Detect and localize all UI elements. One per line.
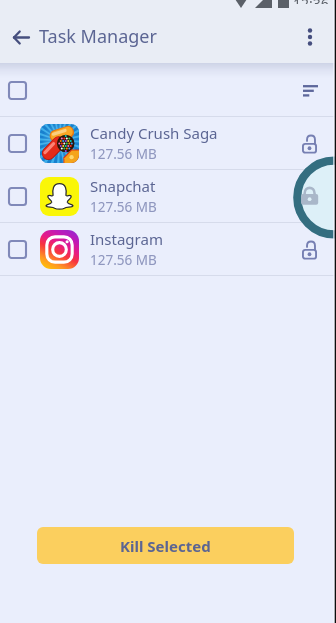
staticText: Kill Selected [120, 536, 211, 556]
staticText: Candy Crush Saga [90, 123, 218, 143]
staticText: 127.56 MB [90, 145, 157, 163]
staticText: 12:36 [293, 0, 329, 4]
button[interactable]: More options [292, 13, 328, 61]
button[interactable]: Lock app [291, 121, 327, 165]
button[interactable]: Kill Selected [37, 527, 294, 564]
staticText: 127.56 MB [90, 251, 157, 269]
button[interactable]: Back [0, 13, 39, 61]
staticText: Snapchat [90, 176, 156, 196]
button[interactable]: Instagram [0, 223, 336, 275]
staticText: Instagram [90, 229, 163, 249]
staticText: 127.56 MB [90, 198, 157, 216]
button[interactable]: Sort [293, 68, 327, 112]
staticText: Task Manager [39, 24, 157, 49]
button[interactable]: Candy Crush Saga [0, 117, 336, 169]
button[interactable]: Lock app [291, 174, 327, 218]
button[interactable]: Snapchat [0, 170, 336, 222]
button[interactable]: Lock app [291, 227, 327, 271]
